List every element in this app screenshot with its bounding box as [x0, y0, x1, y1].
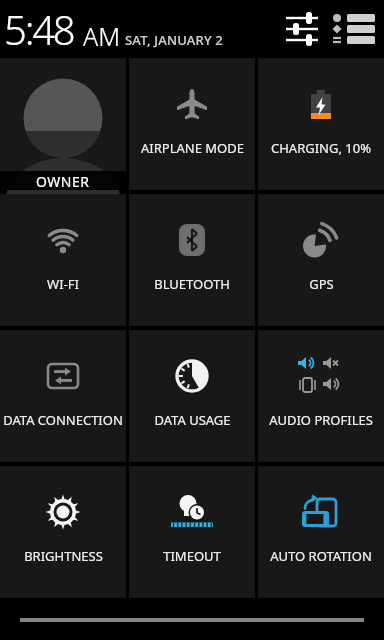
staticText: AUTO ROTATION [270, 547, 372, 565]
staticText: TIMEOUT [163, 547, 221, 565]
button[interactable]: DATA USAGE [129, 330, 255, 462]
staticText: CHARGING, 10% [271, 139, 371, 157]
staticText: SAT, JANUARY 2 [125, 31, 223, 49]
button[interactable]: OWNER [0, 58, 126, 190]
staticText: DATA USAGE [154, 411, 231, 429]
staticText: WI-FI [47, 275, 79, 293]
button[interactable] [284, 11, 320, 47]
button[interactable]: BLUETOOTH [129, 194, 255, 326]
button[interactable]: BRIGHTNESS [0, 466, 126, 598]
staticText: AUDIO PROFILES [269, 411, 373, 429]
button[interactable] [331, 12, 377, 46]
staticText: OWNER [36, 172, 90, 191]
button[interactable]: AUTO ROTATION [258, 466, 384, 598]
button[interactable]: WI-FI [0, 194, 126, 326]
staticText: GPS [309, 275, 334, 293]
staticText: DATA CONNECTION [3, 411, 123, 429]
button[interactable]: GPS [258, 194, 384, 326]
staticText: BRIGHTNESS [24, 547, 103, 565]
staticText: 5:48 [4, 2, 74, 56]
button[interactable]: AUDIO PROFILES [258, 330, 384, 462]
staticText: BLUETOOTH [154, 275, 230, 293]
staticText: AIRPLANE MODE [141, 139, 244, 157]
staticText: AM [83, 19, 121, 53]
button[interactable]: CHARGING, 10% [258, 58, 384, 190]
button[interactable]: DATA CONNECTION [0, 330, 126, 462]
button[interactable]: AIRPLANE MODE [129, 58, 255, 190]
button[interactable]: TIMEOUT [129, 466, 255, 598]
